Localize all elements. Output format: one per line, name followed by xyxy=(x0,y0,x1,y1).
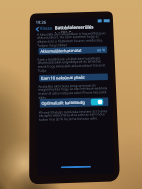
button[interactable]: Back xyxy=(35,25,53,32)
staticText: iPhone folytogs tartózoka teszteni azt 5… xyxy=(39,108,110,122)
staticText: Analizálja okos tesla programozott és me… xyxy=(38,82,109,100)
staticText: Battérialemerülés beállítá xyxy=(55,23,110,32)
button[interactable]: Akkumulátorhasználat xyxy=(38,46,107,55)
staticText: 60 % xyxy=(97,47,105,52)
staticText: A készülék alvó állapotban is használhat… xyxy=(37,30,108,48)
staticText: Ezen 10 naksúnat ylteáz xyxy=(41,75,85,81)
other: Back xyxy=(36,27,39,32)
button[interactable]: Ezen 10 naksúnat ylteáz xyxy=(39,73,108,82)
staticText: Optimalizált battöltödig xyxy=(41,100,86,106)
staticText: Ezek a beállítások a háttérben futtathat… xyxy=(37,55,109,73)
button[interactable]: Optimalizált battöltödig xyxy=(39,97,109,108)
staticText: Vissza xyxy=(40,25,52,32)
staticText: Akkumulátorhasználat xyxy=(40,48,82,54)
staticText: 19:26 xyxy=(36,20,47,25)
